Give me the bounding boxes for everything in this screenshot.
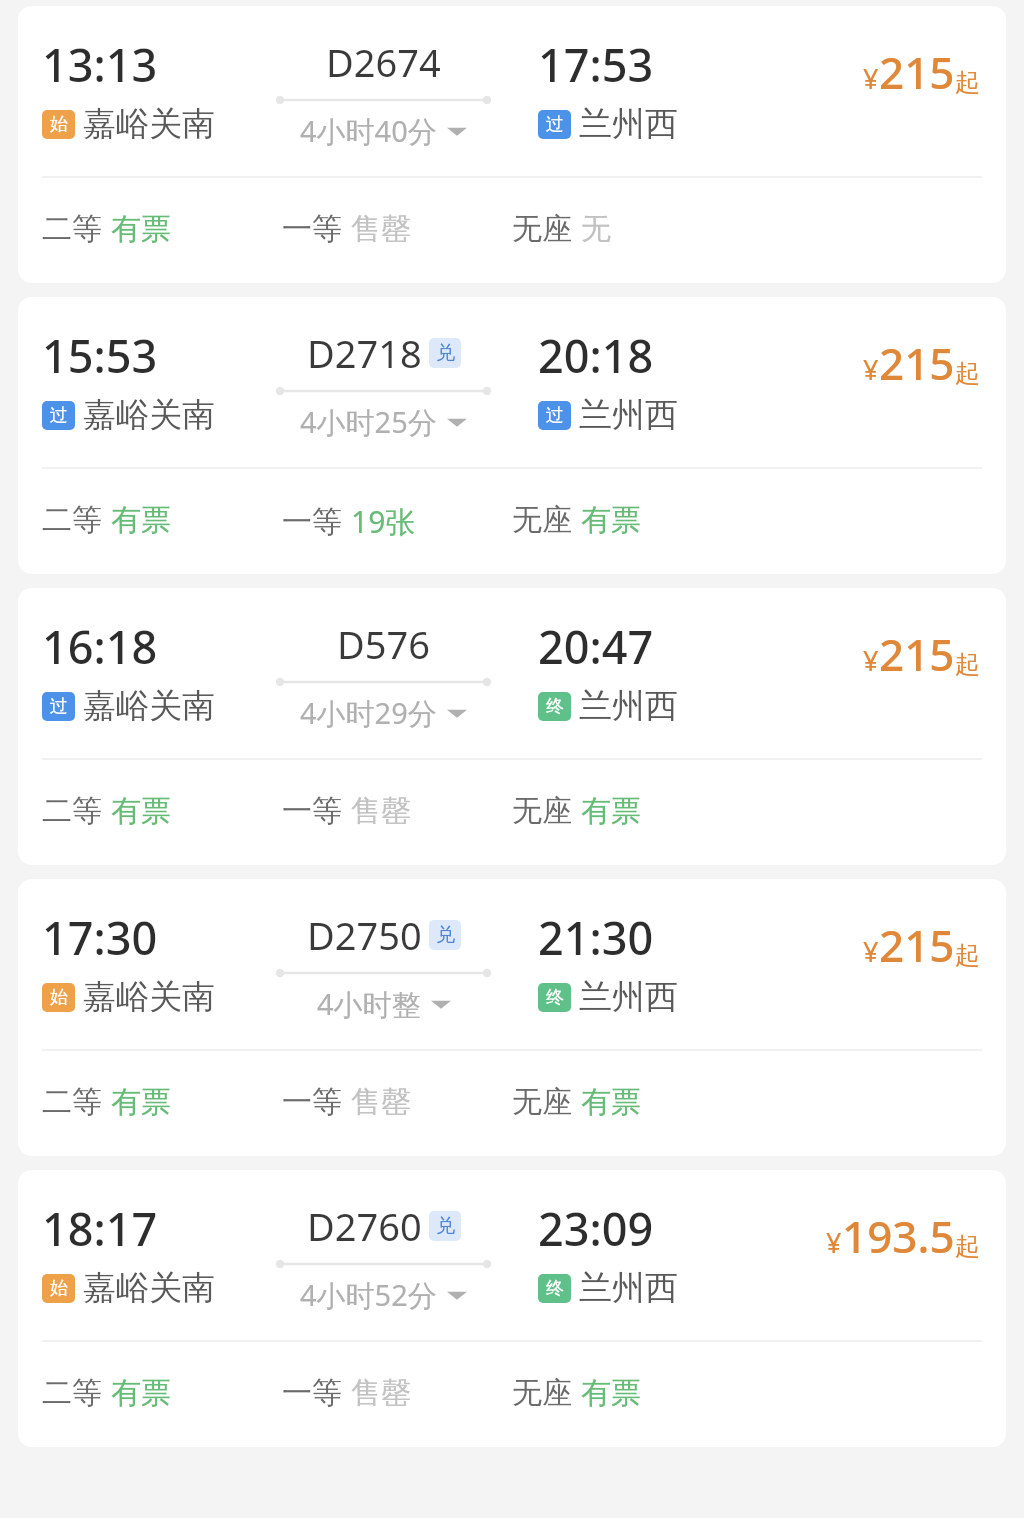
staticText: 终 [546,695,564,718]
staticText: 一等 [282,210,342,248]
staticText: 过 [50,695,68,718]
staticText: 嘉峪关南 [83,976,215,1018]
button[interactable]: 16:18 [18,588,1006,865]
staticText: 有票 [111,210,171,248]
staticText: ¥ [863,933,879,970]
staticText: 17:53 [538,34,654,95]
staticText: 无座 [512,1083,572,1121]
staticText: 始 [50,986,68,1009]
staticText: 过 [50,404,68,427]
staticText: 无 [581,210,611,248]
staticText: 无座 [512,792,572,830]
staticText: 有票 [581,501,641,539]
staticText: 售罄 [351,792,411,830]
staticText: ¥ [863,642,879,679]
staticText: D2718 [307,327,422,379]
staticText: 有票 [111,501,171,539]
staticText: ¥ [826,1224,842,1261]
staticText: 有票 [581,1083,641,1121]
staticText: 20:47 [538,616,654,677]
staticText: 一等 [282,792,342,830]
staticText: 17:30 [42,907,158,968]
staticText: 二等 [42,1083,102,1121]
staticText: 4小时整 [317,984,421,1024]
staticText: 无座 [512,1374,572,1412]
staticText: 193.5 [842,1206,955,1266]
staticText: D2674 [326,36,441,88]
staticText: 嘉峪关南 [83,1267,215,1309]
staticText: 兑 [436,923,455,947]
staticText: 有票 [581,1374,641,1412]
staticText: 嘉峪关南 [83,394,215,436]
staticText: 18:17 [42,1198,158,1259]
button[interactable]: 15:53 [18,297,1006,574]
staticText: 16:18 [42,616,158,677]
staticText: 二等 [42,501,102,539]
staticText: 13:13 [42,34,158,95]
staticText: 215 [879,42,955,102]
staticText: 始 [50,1277,68,1300]
staticText: 15:53 [42,325,158,386]
staticText: 嘉峪关南 [83,103,215,145]
staticText: D2750 [307,909,422,961]
staticText: 21:30 [538,907,654,968]
staticText: 起 [955,649,980,680]
staticText: 有票 [111,1374,171,1412]
staticText: 兰州西 [579,685,678,727]
staticText: 起 [955,358,980,389]
staticText: 一等 [282,1083,342,1121]
staticText: 兰州西 [579,976,678,1018]
staticText: 19张 [351,501,416,542]
staticText: D576 [337,618,430,670]
staticText: 4小时52分 [300,1275,437,1315]
staticText: 215 [879,333,955,393]
staticText: 兑 [436,1214,455,1238]
staticText: 兰州西 [579,1267,678,1309]
staticText: 一等 [282,503,342,541]
staticText: 嘉峪关南 [83,685,215,727]
staticText: ¥ [863,60,879,97]
staticText: 215 [879,915,955,975]
staticText: 20:18 [538,325,654,386]
staticText: 起 [955,1231,980,1262]
staticText: 终 [546,986,564,1009]
staticText: 售罄 [351,1083,411,1121]
staticText: 兰州西 [579,103,678,145]
staticText: 售罄 [351,1374,411,1412]
staticText: 起 [955,940,980,971]
staticText: 售罄 [351,210,411,248]
staticText: 有票 [581,792,641,830]
staticText: 二等 [42,1374,102,1412]
staticText: 无座 [512,210,572,248]
staticText: 4小时29分 [300,693,437,733]
button[interactable]: 17:30 [18,879,1006,1156]
staticText: 过 [546,113,564,136]
staticText: ¥ [863,351,879,388]
staticText: 215 [879,624,955,684]
staticText: 终 [546,1277,564,1300]
staticText: 有票 [111,1083,171,1121]
staticText: 兰州西 [579,394,678,436]
staticText: 过 [546,404,564,427]
staticText: 一等 [282,1374,342,1412]
staticText: 兑 [436,341,455,365]
staticText: 无座 [512,501,572,539]
staticText: D2760 [307,1200,422,1252]
button[interactable]: 18:17 [18,1170,1006,1447]
staticText: 起 [955,67,980,98]
staticText: 4小时25分 [300,402,437,442]
staticText: 二等 [42,792,102,830]
staticText: 二等 [42,210,102,248]
staticText: 4小时40分 [300,111,437,151]
staticText: 有票 [111,792,171,830]
staticText: 23:09 [538,1198,654,1259]
button[interactable]: 13:13 [18,6,1006,283]
staticText: 始 [50,113,68,136]
